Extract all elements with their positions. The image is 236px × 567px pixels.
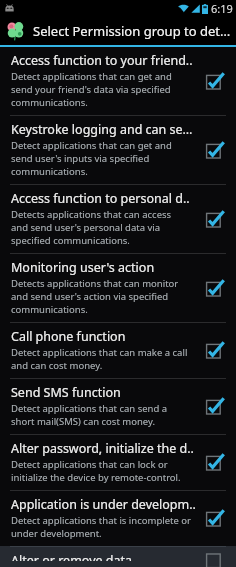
button[interactable]: Toggle detection xyxy=(202,449,228,475)
button[interactable]: Toggle detection xyxy=(202,393,228,419)
staticText: and send user's personal data via xyxy=(11,221,161,234)
button[interactable]: Send SMS function xyxy=(0,379,236,434)
button[interactable]: Toggle detection xyxy=(202,137,228,163)
button[interactable]: Access function to your friend.. xyxy=(0,47,236,115)
button[interactable]: Monitoring user's action xyxy=(0,254,236,322)
staticText: under development. xyxy=(11,527,102,540)
staticText: Alter password, initialize the d.. xyxy=(11,440,194,457)
button[interactable]: Alter or remove data xyxy=(0,547,236,567)
staticText: and can cost money. xyxy=(11,359,103,372)
staticText: Detect applications that can get and xyxy=(11,139,172,152)
staticText: initialize the device by remote-control. xyxy=(11,471,181,484)
staticText: 6:19 xyxy=(211,1,233,16)
button[interactable]: Alter password, initialize the d.. xyxy=(0,435,236,490)
button[interactable]: Application is under developm.. xyxy=(0,491,236,546)
staticText: Access function to personal d.. xyxy=(11,190,190,207)
staticText: Detects applications that can monitor xyxy=(11,277,179,290)
button[interactable]: Access function to personal d.. xyxy=(0,185,236,253)
button[interactable]: Call phone function xyxy=(0,323,236,378)
staticText: Access function to your friend.. xyxy=(11,52,193,69)
staticText: Call phone function xyxy=(11,328,126,345)
staticText: Detect applications that is incomplete o… xyxy=(11,514,191,527)
staticText: Alter or remove data xyxy=(11,552,133,561)
staticText: communications. xyxy=(11,303,88,316)
staticText: and send user's action via specified xyxy=(11,290,169,303)
button[interactable]: Toggle detection xyxy=(202,68,228,94)
staticText: Application is under developm.. xyxy=(11,496,196,513)
button[interactable]: Toggle detection xyxy=(202,275,228,301)
button[interactable]: Toggle detection xyxy=(202,206,228,232)
button[interactable]: Toggle detection xyxy=(202,337,228,363)
staticText: Select Permission group to detect xyxy=(33,22,236,40)
button[interactable]: Keystroke logging and can sen.. xyxy=(0,116,236,184)
staticText: Detect applications that can send a xyxy=(11,402,168,415)
staticText: short mail(SMS) can cost money. xyxy=(11,415,155,428)
staticText: Keystroke logging and can sen.. xyxy=(11,121,196,138)
staticText: specified communications. xyxy=(11,234,130,247)
staticText: Detect applications that can make a call xyxy=(11,346,188,359)
staticText: communications. xyxy=(11,165,88,178)
staticText: Detects applications that can access xyxy=(11,208,172,221)
staticText: send user's inputs via specified xyxy=(11,152,150,165)
staticText: Detect applications that can lock or xyxy=(11,458,168,471)
staticText: Detect applications that can get and xyxy=(11,70,172,83)
button[interactable]: Toggle detection xyxy=(202,552,228,561)
staticText: Monitoring user's action xyxy=(11,259,155,276)
button[interactable]: Toggle detection xyxy=(202,505,228,531)
staticText: Send SMS function xyxy=(11,384,121,401)
staticText: send your friend's data via specified xyxy=(11,83,171,96)
staticText: communications. xyxy=(11,96,88,109)
